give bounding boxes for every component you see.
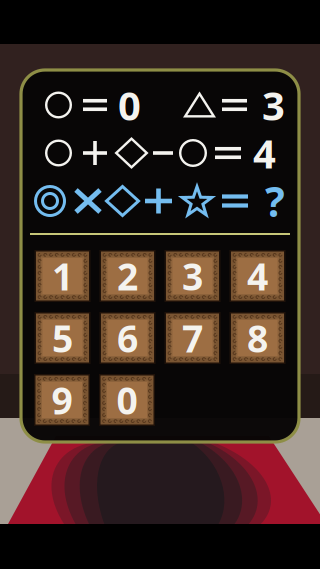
button[interactable]: 1 <box>34 250 90 302</box>
button[interactable]: 6 <box>99 312 155 364</box>
staticText: 0 <box>116 375 137 425</box>
staticText: 4 <box>253 126 276 179</box>
staticText: 6 <box>117 313 138 363</box>
button[interactable]: 2 <box>99 250 155 302</box>
button[interactable]: 7 <box>164 312 220 364</box>
staticText: 2 <box>117 251 138 301</box>
button[interactable]: 3 <box>164 250 220 302</box>
staticText: 9 <box>51 375 72 425</box>
staticText: 7 <box>182 313 203 363</box>
staticText: ? <box>265 174 285 228</box>
button[interactable]: 9 <box>34 374 90 426</box>
staticText: 3 <box>262 78 285 131</box>
button[interactable]: 4 <box>229 250 285 302</box>
staticText: 1 <box>52 251 73 301</box>
button[interactable]: 5 <box>34 312 90 364</box>
staticText: 3 <box>182 251 203 301</box>
staticText: 0 <box>118 78 141 131</box>
staticText: 8 <box>247 313 268 363</box>
button[interactable]: 0 <box>99 374 155 426</box>
button[interactable]: 8 <box>229 312 285 364</box>
staticText: 4 <box>247 251 268 301</box>
staticText: 5 <box>52 313 73 363</box>
